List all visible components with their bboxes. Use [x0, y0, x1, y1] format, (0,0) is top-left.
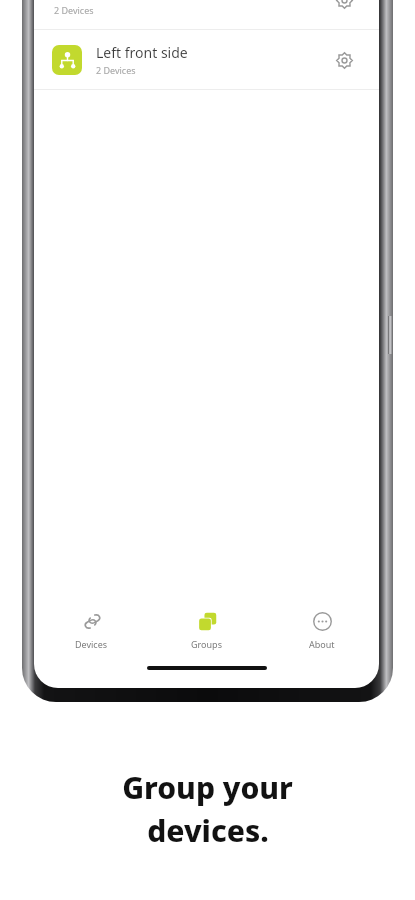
- button[interactable]: Groups: [149, 600, 264, 658]
- button[interactable]: Left front side: [34, 30, 379, 89]
- staticText: Left front side: [96, 43, 188, 62]
- staticText: 2 Devices: [54, 4, 94, 16]
- button[interactable]: Settings: [327, 0, 361, 17]
- staticText: Group your: [122, 767, 293, 808]
- staticText: About: [309, 638, 335, 650]
- staticText: 2 Devices: [96, 64, 136, 76]
- staticText: Devices: [75, 638, 108, 650]
- button[interactable]: Devices: [34, 600, 149, 658]
- button[interactable]: All devices: [34, 0, 379, 29]
- button[interactable]: About: [264, 600, 379, 658]
- staticText: devices.: [147, 810, 269, 851]
- staticText: Groups: [191, 638, 222, 650]
- button[interactable]: Settings: [327, 43, 361, 77]
